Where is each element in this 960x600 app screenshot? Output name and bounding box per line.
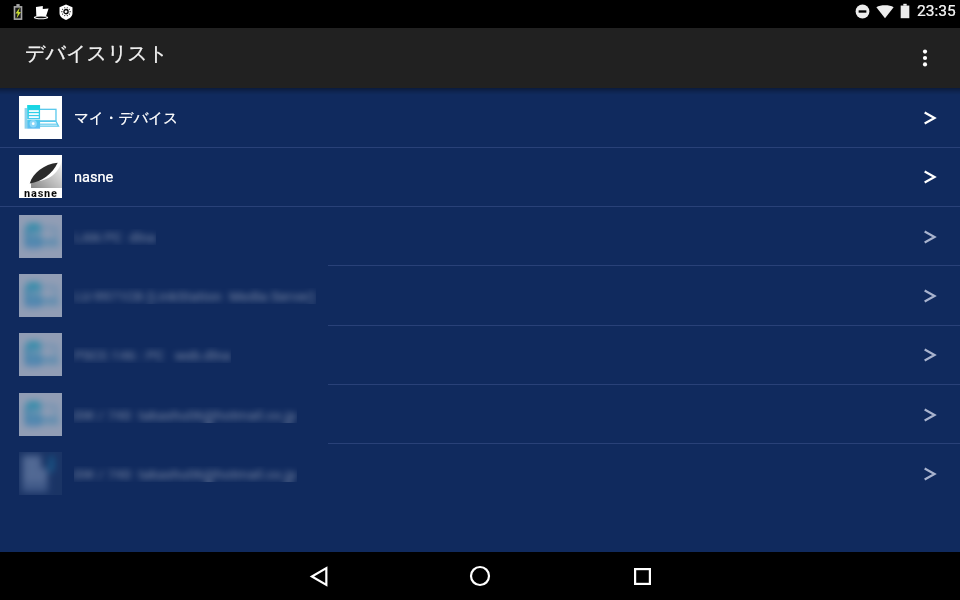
button[interactable]: nasne	[0, 147, 960, 206]
staticText: デバイスリスト	[25, 41, 169, 66]
button[interactable]: マイ・デバイス	[0, 88, 960, 147]
button[interactable]: LAN PC dlna	[0, 207, 960, 266]
staticText: LU-9971CB (LinkStation Media Server)	[74, 288, 316, 304]
staticText: nasne	[24, 187, 58, 198]
button[interactable]: SW / 740 takashu06@hotmail.co.jp	[0, 444, 960, 503]
staticText: PSCE-146 : PC web.dlna	[74, 347, 231, 363]
staticText: nasne	[74, 168, 114, 185]
staticText: LAN PC dlna	[74, 229, 156, 245]
button[interactable]: Home	[456, 552, 504, 600]
staticText: マイ・デバイス	[74, 109, 179, 127]
staticText: SW / 740 takashu06@hotmail.co.jp	[74, 407, 297, 423]
button[interactable]: Back	[295, 552, 343, 600]
staticText: SW / 740 takashu06@hotmail.co.jp	[74, 466, 297, 482]
button[interactable]: SW / 740 takashu06@hotmail.co.jp	[0, 385, 960, 444]
staticText: 23:35	[917, 2, 956, 20]
button[interactable]: LU-9971CB (LinkStation Media Server)	[0, 266, 960, 325]
button[interactable]: More options	[901, 34, 949, 82]
button[interactable]: PSCE-146 : PC web.dlna	[0, 325, 960, 384]
button[interactable]: Recents	[618, 552, 666, 600]
